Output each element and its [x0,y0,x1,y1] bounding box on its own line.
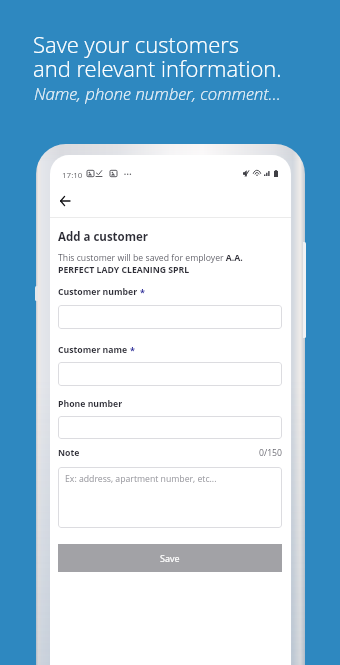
staticText: * [140,286,145,298]
button[interactable] [58,416,282,439]
staticText: Name, phone number, comment… [34,82,281,105]
staticText: PERFECT LADY CLEANING SPRL [58,264,190,276]
staticText: Customer number [58,286,138,298]
staticText: Save [160,552,180,564]
staticText: * [130,344,135,356]
staticText: This customer will be saved for employer… [58,252,243,264]
staticText: Add a customer [58,229,149,245]
staticText: Ex: address, apartment number, etc... [65,473,217,485]
staticText: Phone number [58,398,123,410]
staticText: Customer name [58,344,128,356]
button[interactable]: Back [51,187,79,215]
button[interactable]: Save [58,544,282,572]
staticText: 0/150 [259,447,283,459]
staticText: and relevant information. [33,53,282,83]
staticText: 17:10 [62,169,83,180]
staticText: Save your customers [33,29,240,59]
staticText: Note [58,447,80,459]
button[interactable]: Ex: address, apartment number, etc... [58,467,282,528]
button[interactable] [58,305,282,329]
button[interactable] [58,362,282,386]
